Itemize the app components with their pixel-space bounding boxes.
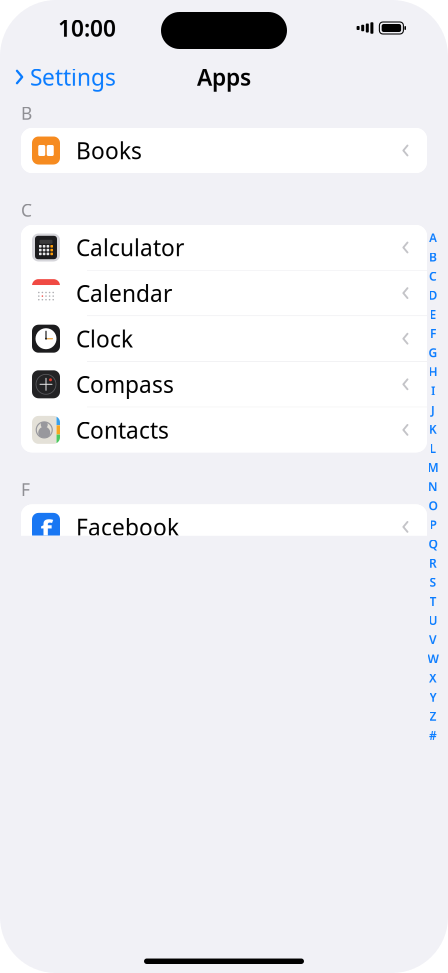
staticText: E (429, 306, 436, 322)
staticText: S (429, 574, 436, 590)
staticText: C (429, 268, 437, 284)
staticText: Contacts (76, 415, 169, 445)
staticText: T (429, 593, 436, 609)
staticText: L (429, 440, 436, 456)
staticText: M (427, 459, 438, 475)
staticText: R (429, 555, 437, 571)
staticText: B (429, 249, 437, 265)
staticText: Facebook (76, 512, 179, 542)
staticText: Calendar (76, 278, 172, 308)
staticText: U (428, 612, 437, 628)
staticText: f (40, 510, 51, 549)
staticText: B (21, 101, 32, 124)
staticText: F (21, 478, 30, 501)
button[interactable]: Settings (0, 56, 116, 98)
staticText: 10:00 (58, 13, 116, 43)
staticText: H (428, 364, 437, 380)
staticText: O (428, 498, 437, 514)
button[interactable]: Calculator (21, 225, 427, 271)
button[interactable]: f (21, 504, 427, 550)
staticText: Apps (197, 62, 251, 92)
button[interactable]: Contacts (21, 407, 427, 452)
staticText: X (429, 670, 437, 686)
staticText: Settings (30, 62, 116, 92)
staticText: # (429, 727, 437, 743)
staticText: Z (429, 708, 436, 724)
staticText: W (427, 651, 438, 667)
staticText: J (431, 402, 435, 418)
staticText: V (429, 632, 437, 647)
staticText: K (429, 421, 437, 437)
button[interactable]: Books (21, 128, 427, 173)
staticText: P (429, 517, 436, 533)
staticText: F (430, 325, 436, 341)
staticText: N (428, 478, 438, 494)
staticText: Q (428, 536, 437, 552)
staticText: Compass (76, 369, 174, 399)
button[interactable]: Clock (21, 316, 427, 362)
staticText: G (428, 345, 437, 360)
staticText: Books (76, 135, 142, 165)
button[interactable]: Calendar (21, 271, 427, 316)
staticText: Calculator (76, 232, 184, 262)
staticText: A (429, 230, 437, 246)
staticText: D (428, 287, 437, 303)
staticText: Clock (76, 324, 133, 354)
staticText: Y (429, 689, 436, 705)
staticText: I (431, 383, 435, 399)
button[interactable]: Compass (21, 362, 427, 407)
staticText: C (21, 198, 32, 221)
